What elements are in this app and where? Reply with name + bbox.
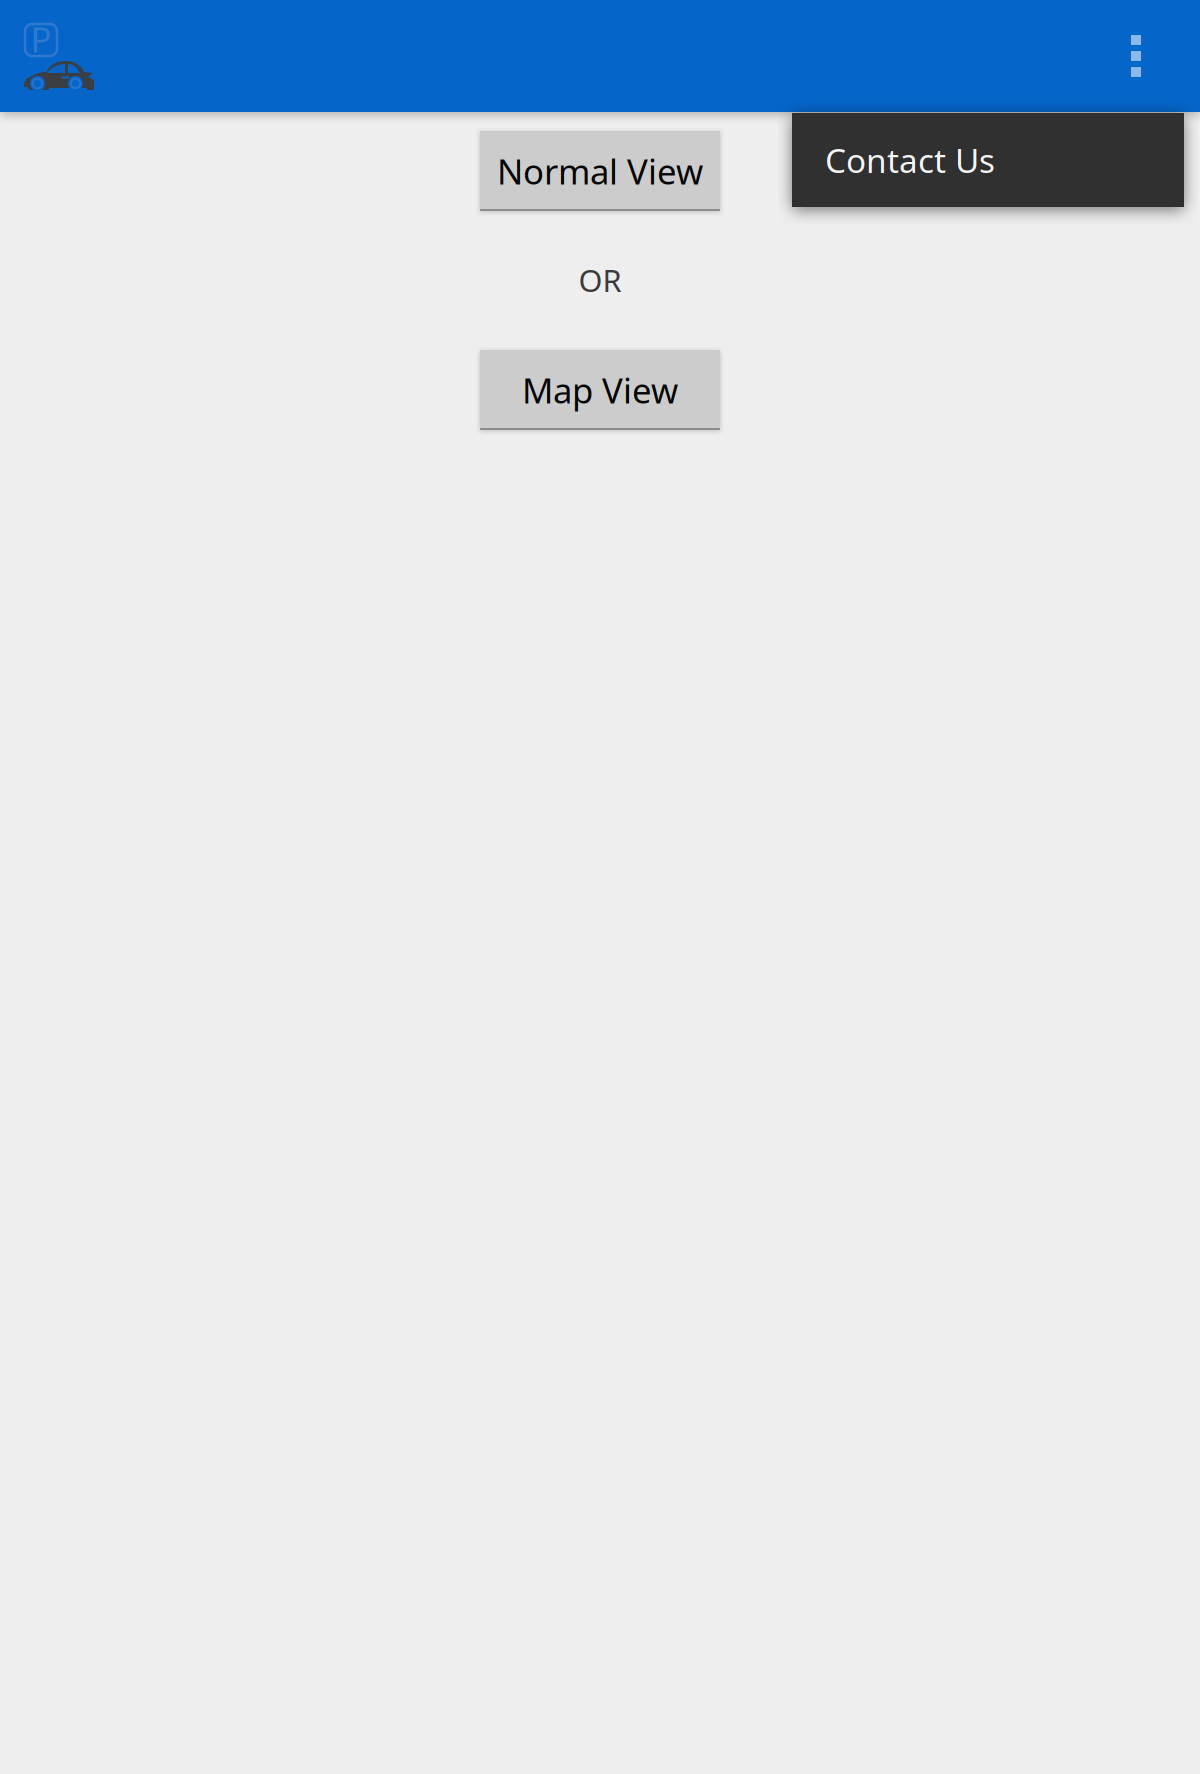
staticText: OR [578,260,621,300]
staticText: Contact Us [825,138,995,182]
button[interactable]: Map View [480,350,720,430]
button[interactable]: Contact Us [792,113,1184,207]
button[interactable]: More options [1072,0,1200,112]
staticText: Map View [522,367,678,413]
staticText: Normal View [497,148,703,194]
button[interactable]: Normal View [480,131,720,211]
button[interactable]: Parking — home [0,0,120,112]
